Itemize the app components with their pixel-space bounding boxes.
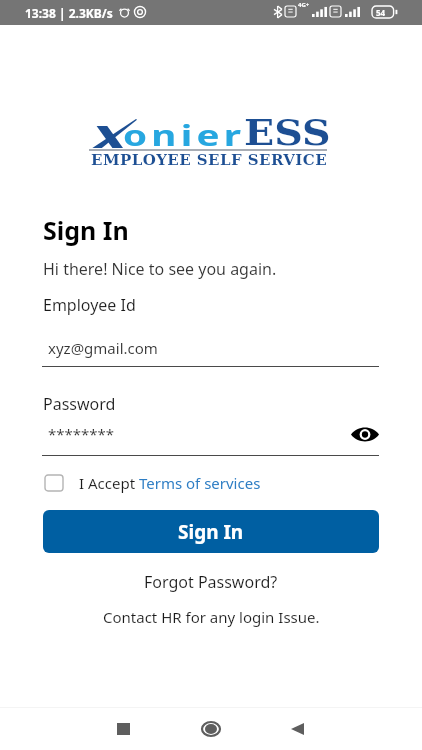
button[interactable]: Back — [274, 709, 320, 748]
staticText: onier — [123, 115, 245, 154]
staticText: xyz@gmail.com — [48, 338, 158, 358]
button[interactable]: Recent apps — [100, 709, 146, 748]
staticText: 54 — [376, 7, 386, 18]
staticText: Hi there! Nice to see you again. — [43, 258, 277, 280]
staticText: 13:38 | 2.3KB/s — [25, 5, 113, 21]
staticText: Employee Id — [43, 294, 136, 316]
button[interactable]: Sign In — [43, 510, 379, 553]
staticText: ******** — [48, 424, 115, 444]
staticText: Sign In — [178, 519, 244, 545]
button[interactable]: I Accept Terms of services — [79, 473, 261, 493]
button[interactable]: Forgot Password? — [144, 571, 278, 593]
staticText: ESS — [244, 111, 331, 153]
staticText: Password — [43, 393, 116, 415]
button[interactable]: Accept terms checkbox — [45, 475, 63, 491]
button[interactable]: Home — [188, 709, 234, 748]
button[interactable]: Show password — [350, 420, 379, 448]
staticText: Contact HR for any login Issue. — [103, 607, 320, 627]
staticText: EMPLOYEE SELF SERVICE — [91, 151, 328, 169]
staticText: 4G+ — [298, 1, 310, 9]
staticText: Sign In — [43, 213, 129, 247]
